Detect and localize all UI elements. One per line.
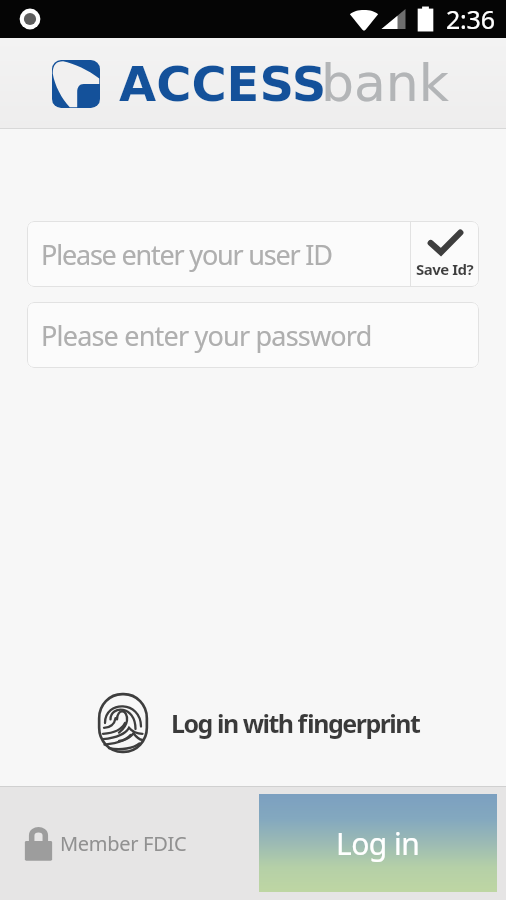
- staticText: Please enter your password: [41, 317, 372, 354]
- staticText: 2:36: [446, 2, 495, 36]
- button[interactable]: Please enter your password: [27, 302, 479, 368]
- button[interactable]: Save Id?: [411, 221, 479, 287]
- other: Notification: [17, 6, 43, 32]
- staticText: Save Id?: [416, 259, 474, 279]
- staticText: Member FDIC: [60, 830, 187, 857]
- button[interactable]: Please enter your user ID: [27, 221, 410, 287]
- staticText: Please enter your user ID: [41, 236, 332, 273]
- staticText: Log in: [336, 823, 420, 864]
- staticText: bank: [321, 53, 449, 114]
- staticText: Log in with fingerprint: [171, 706, 420, 740]
- staticText: ACCESS: [119, 56, 327, 112]
- button[interactable]: Member FDIC: [24, 826, 187, 861]
- button[interactable]: Log in: [259, 794, 497, 892]
- button[interactable]: Log in with fingerprint: [98, 688, 506, 758]
